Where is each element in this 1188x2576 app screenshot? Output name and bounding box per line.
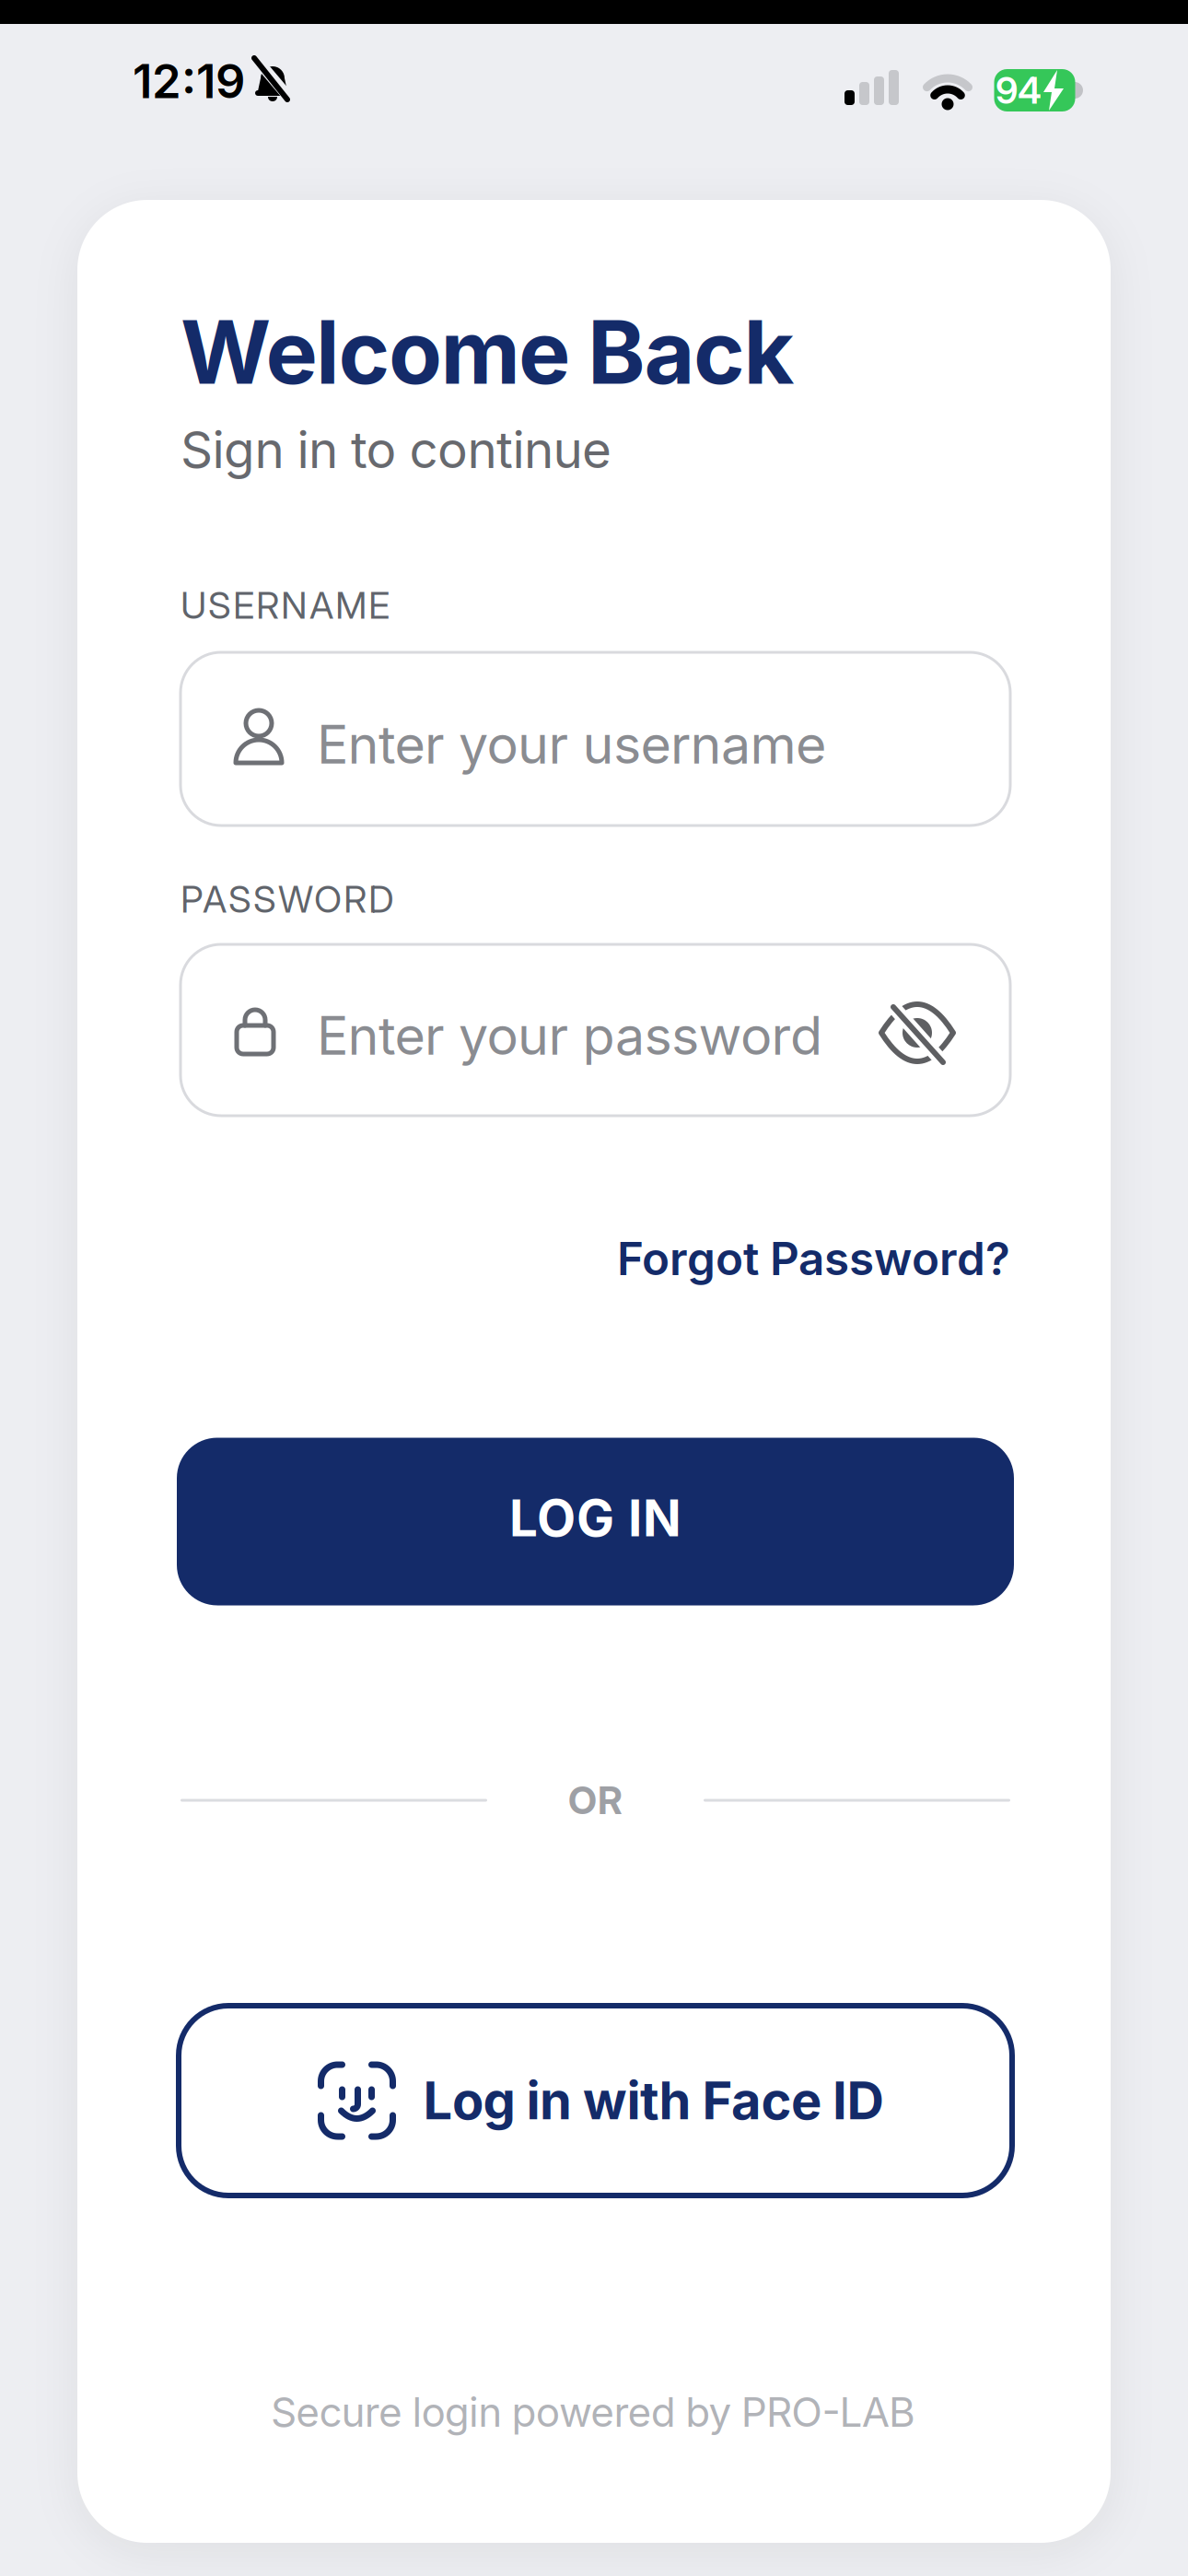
staticText: Enter your username [317,713,826,776]
staticText: OR [568,1778,623,1823]
staticText: Log in with Face ID [423,2070,884,2131]
staticText: PASSWORD [181,877,394,921]
staticText: Enter your password [317,1004,822,1067]
staticText: Welcome Back [181,301,794,403]
staticText: 12:19 [133,54,245,109]
button[interactable]: Forgot Password? [181,1232,1010,1285]
button[interactable]: Enter your password [181,944,1010,1116]
button[interactable]: LOG IN [177,1438,1014,1605]
button[interactable] [862,978,973,1088]
button[interactable]: Log in with Face ID [179,2006,1012,2195]
staticText: Secure login powered by PRO-LAB [271,2388,915,2436]
staticText: Sign in to continue [181,420,611,479]
staticText: Forgot Password? [617,1232,1010,1285]
staticText: LOG IN [509,1488,681,1548]
staticText: USERNAME [181,584,390,627]
button[interactable]: Enter your username [181,652,1010,825]
staticText: 94 [996,69,1042,112]
